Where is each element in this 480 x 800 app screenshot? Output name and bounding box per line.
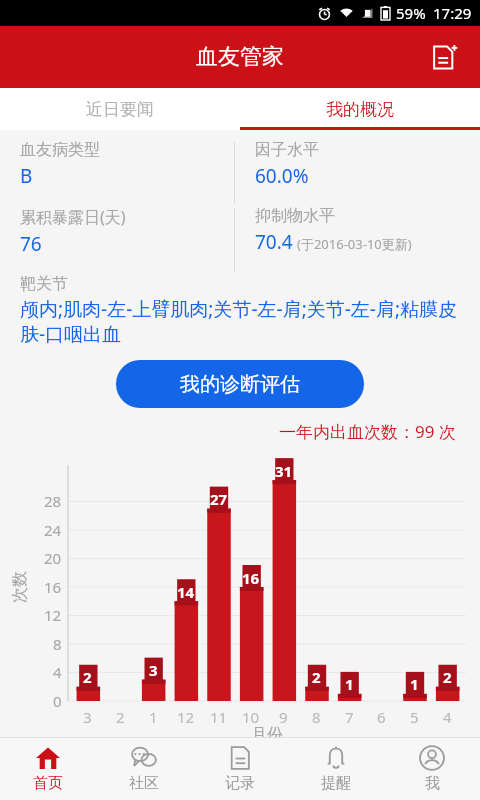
staticText: 11: [210, 707, 228, 727]
button[interactable]: 记录: [192, 738, 288, 800]
staticText: 2: [443, 667, 452, 687]
button[interactable]: 社区: [96, 738, 192, 800]
staticText: 10: [242, 707, 260, 727]
staticText: 76: [20, 231, 42, 257]
staticText: 我: [425, 774, 440, 793]
staticText: 4: [53, 662, 62, 682]
staticText: 2: [116, 707, 125, 727]
staticText: 2: [83, 667, 92, 687]
staticText: 24: [44, 520, 62, 540]
staticText: 累积暴露日(天): [20, 206, 126, 228]
staticText: 16: [242, 568, 260, 588]
button[interactable]: New record: [422, 35, 466, 79]
button[interactable]: 我的诊断评估: [116, 360, 364, 408]
staticText: 12: [44, 605, 62, 625]
staticText: 抑制物水平: [255, 206, 335, 226]
staticText: 60.0%: [255, 163, 309, 189]
staticText: 20: [44, 548, 62, 568]
staticText: 颅内;肌肉-左-上臂肌肉;关节-左-肩;关节-左-肩;粘膜皮肤-口咽出血: [20, 296, 464, 346]
staticText: 记录: [225, 774, 255, 793]
staticText: 0: [53, 691, 62, 711]
staticText: 4: [443, 707, 452, 727]
staticText: 近日要闻: [86, 99, 154, 120]
staticText: 1: [149, 707, 158, 727]
staticText: 28: [44, 491, 62, 511]
staticText: 27: [210, 489, 228, 509]
staticText: 70.4: [255, 229, 293, 255]
staticText: 2: [312, 667, 321, 687]
staticText: 8: [312, 707, 321, 727]
staticText: 8: [53, 634, 62, 654]
staticText: 3: [149, 660, 158, 680]
staticText: 17:29: [433, 3, 472, 23]
button[interactable]: 我: [384, 738, 480, 800]
staticText: 一年内出血次数：99 次: [279, 420, 456, 443]
staticText: 14: [177, 582, 195, 602]
staticText: 16: [44, 577, 62, 597]
staticText: 1: [410, 674, 419, 694]
button[interactable]: 近日要闻: [0, 88, 240, 130]
staticText: 7: [345, 707, 354, 727]
staticText: (于2016-03-10更新): [297, 235, 412, 253]
staticText: 首页: [33, 774, 63, 793]
staticText: 靶关节: [20, 274, 68, 294]
staticText: 因子水平: [255, 140, 319, 160]
staticText: 我的概况: [326, 99, 394, 120]
staticText: 9: [279, 707, 288, 727]
staticText: 1: [345, 674, 354, 694]
button[interactable]: 首页: [0, 738, 96, 800]
staticText: 我的诊断评估: [180, 372, 300, 397]
staticText: 社区: [129, 774, 159, 793]
staticText: 5: [410, 707, 419, 727]
staticText: 次数: [10, 571, 30, 603]
staticText: 月份: [251, 725, 283, 745]
staticText: 6: [377, 707, 386, 727]
staticText: 3: [83, 707, 92, 727]
staticText: 血友管家: [196, 43, 284, 71]
staticText: 提醒: [321, 774, 351, 793]
staticText: 12: [177, 707, 195, 727]
staticText: 血友病类型: [20, 140, 100, 160]
staticText: 59%: [396, 3, 426, 23]
staticText: 31: [275, 461, 293, 481]
button[interactable]: 提醒: [288, 738, 384, 800]
button[interactable]: 我的概况: [240, 88, 480, 130]
staticText: B: [20, 163, 33, 189]
